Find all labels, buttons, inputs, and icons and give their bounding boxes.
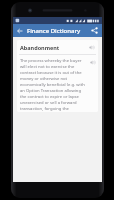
staticText: The process whereby the buyer will elect… (20, 58, 88, 112)
button[interactable]: Back (15, 26, 25, 36)
staticText: Abandonment (20, 44, 60, 51)
button[interactable]: Share (89, 25, 100, 36)
staticText: Finance Dictionary (27, 27, 81, 35)
button[interactable]: Speak definition (88, 58, 96, 66)
button[interactable]: Abandonment (17, 40, 98, 112)
button[interactable]: Speak term (87, 43, 95, 51)
